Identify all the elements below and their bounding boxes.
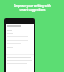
staticText: Improve your writing with smart suggesti…: [14, 4, 51, 12]
